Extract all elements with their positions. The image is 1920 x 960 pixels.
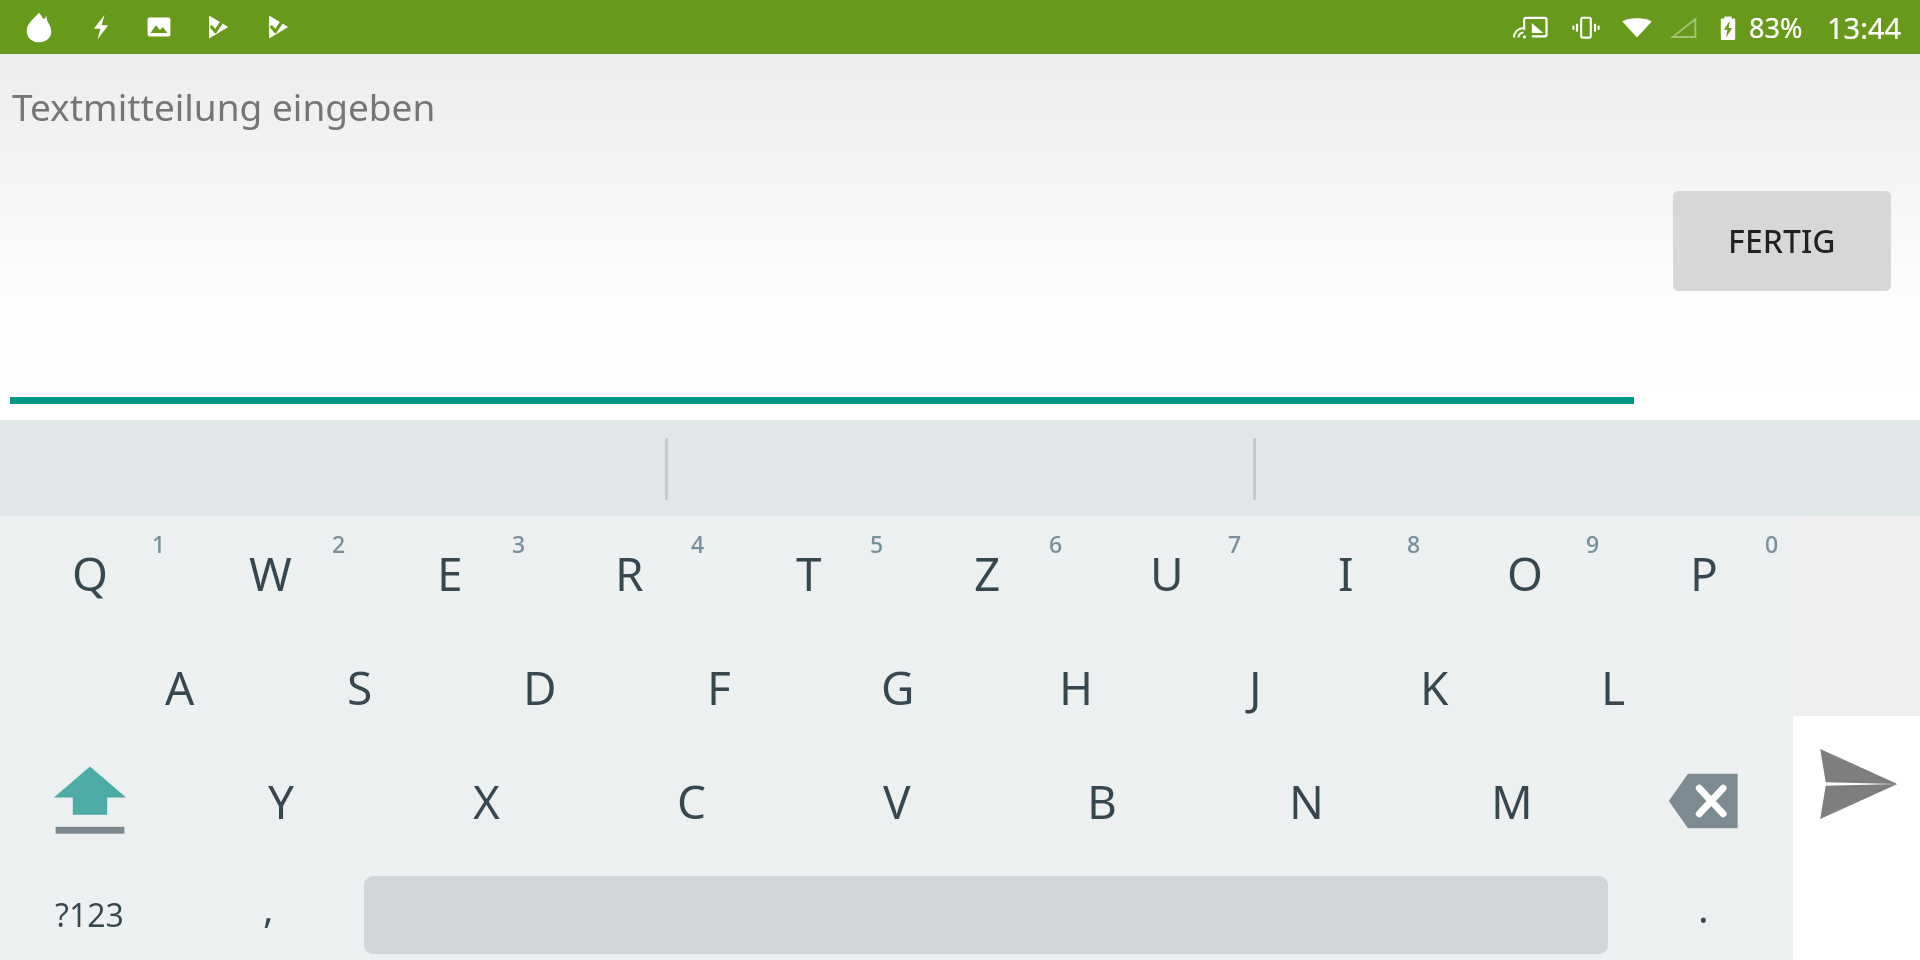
staticText: V [883, 770, 911, 833]
button[interactable]: B [999, 744, 1204, 858]
button[interactable]: L [1524, 630, 1703, 744]
staticText: , [263, 880, 274, 934]
staticText: O [1507, 542, 1543, 605]
button[interactable]: K [1345, 630, 1524, 744]
button[interactable]: Z [898, 516, 1077, 630]
button[interactable]: X [384, 744, 589, 858]
staticText: T [796, 542, 822, 605]
staticText: H [1059, 656, 1094, 719]
staticText: 0 [1765, 528, 1779, 559]
button[interactable]: G [808, 630, 987, 744]
button[interactable]: U [1077, 516, 1256, 630]
staticText: E [437, 542, 463, 605]
button[interactable]: D [450, 630, 629, 744]
button[interactable]: Q [0, 516, 180, 630]
button[interactable]: W [180, 516, 360, 630]
staticText: D [523, 656, 557, 719]
staticText: G [881, 656, 915, 719]
staticText: U [1150, 542, 1184, 605]
staticText: L [1601, 656, 1626, 719]
button[interactable]: ?123 [0, 858, 179, 960]
staticText: Y [268, 770, 295, 833]
staticText: 3 [512, 528, 526, 559]
button[interactable]: Shift [0, 744, 179, 858]
button[interactable]: R [540, 516, 719, 630]
staticText: I [1338, 542, 1354, 605]
staticText: R [615, 542, 644, 605]
staticText: ?123 [55, 893, 124, 937]
staticText: M [1491, 770, 1533, 833]
staticText: S [347, 656, 373, 719]
staticText: X [473, 770, 500, 833]
button[interactable]: S [270, 630, 450, 744]
staticText: N [1289, 770, 1324, 833]
button[interactable]: E [360, 516, 540, 630]
button[interactable]: FERTIG [1673, 191, 1891, 291]
staticText: K [1420, 656, 1449, 719]
button[interactable]: . [1614, 858, 1793, 960]
button[interactable]: Backspace [1614, 744, 1793, 858]
staticText: 13:44 [1827, 8, 1902, 47]
staticText: . [1698, 880, 1709, 934]
button[interactable]: N [1204, 744, 1409, 858]
staticText: Textmitteilung eingeben [12, 81, 436, 131]
button[interactable]: T [719, 516, 898, 630]
staticText: 8 [1407, 528, 1421, 559]
button[interactable]: P [1614, 516, 1793, 630]
staticText: 2 [332, 528, 346, 559]
button[interactable]: C [589, 744, 794, 858]
button[interactable]: M [1409, 744, 1614, 858]
button[interactable]: F [629, 630, 808, 744]
staticText: 83% [1749, 9, 1803, 46]
staticText: FERTIG [1728, 219, 1836, 263]
button[interactable]: H [987, 630, 1166, 744]
staticText: A [165, 656, 195, 719]
button[interactable]: , [179, 858, 358, 960]
button[interactable]: I [1256, 516, 1435, 630]
staticText: J [1249, 656, 1262, 719]
staticText: C [677, 770, 707, 833]
staticText: F [707, 656, 731, 719]
button[interactable]: V [794, 744, 999, 858]
staticText: 9 [1586, 528, 1600, 559]
staticText: 4 [691, 528, 705, 559]
button[interactable]: Y [179, 744, 384, 858]
staticText: Z [974, 542, 1001, 605]
button[interactable]: O [1435, 516, 1614, 630]
staticText: Q [72, 542, 108, 605]
staticText: 5 [870, 528, 884, 559]
staticText: 1 [152, 528, 166, 559]
button[interactable]: A [90, 630, 270, 744]
staticText: 7 [1228, 528, 1242, 559]
staticText: W [249, 542, 292, 605]
button[interactable]: J [1166, 630, 1345, 744]
button[interactable]: Send [1793, 716, 1920, 960]
staticText: 6 [1049, 528, 1063, 559]
staticText: P [1690, 542, 1718, 605]
staticText: B [1087, 770, 1117, 833]
